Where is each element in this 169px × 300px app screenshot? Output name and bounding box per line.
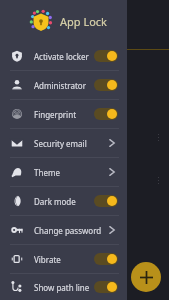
button[interactable]	[94, 79, 118, 91]
staticText: Theme	[34, 167, 106, 178]
staticText: Vibrate	[34, 254, 94, 265]
other: Security email	[106, 137, 118, 149]
button[interactable]: Add	[131, 262, 161, 292]
button[interactable]: Activate locker	[0, 42, 127, 70]
button[interactable]	[94, 281, 118, 293]
other: Change password	[106, 224, 118, 236]
staticText: Fingerprint	[34, 109, 94, 120]
staticText: Show path line	[34, 282, 94, 293]
button[interactable]	[94, 50, 118, 62]
button[interactable]: Security email	[0, 129, 127, 157]
staticText: Change password	[34, 225, 106, 236]
other: Theme	[106, 166, 118, 178]
staticText: Administrator	[34, 80, 94, 91]
button[interactable]: Administrator	[0, 71, 127, 99]
staticText: App Lock	[60, 14, 107, 29]
button[interactable]: Change password	[0, 216, 127, 244]
staticText: Activate locker	[34, 51, 94, 62]
button[interactable]	[94, 195, 118, 207]
button[interactable]: Show path line	[0, 274, 127, 300]
button[interactable]	[94, 108, 118, 120]
button[interactable]: Fingerprint	[0, 100, 127, 128]
staticText: Dark mode	[34, 196, 94, 207]
button[interactable]: Vibrate	[0, 245, 127, 273]
button[interactable]	[94, 253, 118, 265]
button[interactable]: Theme	[0, 158, 127, 186]
staticText: Security email	[34, 138, 106, 149]
button[interactable]: Dark mode	[0, 187, 127, 215]
